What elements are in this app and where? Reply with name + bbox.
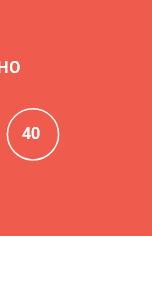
staticText: 40 [22, 124, 41, 143]
staticText: HO [0, 58, 22, 77]
